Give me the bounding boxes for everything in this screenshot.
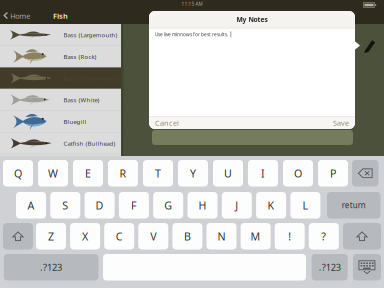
button[interactable]: R bbox=[108, 160, 138, 186]
staticText: Bass (Largemouth) bbox=[63, 31, 117, 39]
button[interactable]: .?123 bbox=[4, 254, 98, 280]
staticText: U bbox=[224, 166, 232, 180]
button[interactable]: Bass (Rock) bbox=[0, 46, 121, 67]
button[interactable]: F bbox=[119, 192, 149, 218]
button[interactable]: H bbox=[187, 192, 217, 218]
staticText: X bbox=[82, 229, 88, 243]
staticText: S bbox=[62, 198, 68, 212]
button[interactable]: Cancel bbox=[155, 117, 195, 129]
button[interactable]: I bbox=[248, 160, 278, 186]
button[interactable]: Bass (Largemouth) bbox=[0, 24, 121, 46]
staticText: Z bbox=[48, 229, 54, 243]
staticText: Bass (Rock) bbox=[63, 52, 96, 61]
staticText: Fish bbox=[53, 11, 68, 21]
staticText: Cancel bbox=[155, 118, 179, 128]
staticText: J bbox=[235, 198, 238, 212]
staticText: H bbox=[198, 198, 206, 212]
staticText: .?123 bbox=[40, 261, 62, 274]
staticText: N bbox=[217, 229, 225, 243]
button[interactable]: Shift bbox=[343, 223, 381, 249]
button[interactable]: K bbox=[256, 192, 286, 218]
button[interactable]: Save bbox=[309, 117, 349, 129]
staticText: E bbox=[85, 166, 91, 180]
staticText: .?123 bbox=[319, 261, 341, 274]
button[interactable]: A bbox=[16, 192, 46, 218]
button[interactable]: C bbox=[104, 223, 134, 249]
button[interactable]: ? bbox=[309, 223, 339, 249]
staticText: L bbox=[302, 198, 308, 212]
button[interactable]: M bbox=[241, 223, 271, 249]
staticText: My Notes bbox=[236, 15, 267, 24]
staticText: R bbox=[119, 166, 126, 180]
button[interactable]: Home bbox=[0, 8, 36, 24]
staticText: K bbox=[268, 198, 275, 212]
staticText: ? bbox=[321, 229, 326, 243]
staticText: D bbox=[96, 198, 104, 212]
staticText: G bbox=[164, 198, 172, 212]
button[interactable]: U bbox=[213, 160, 243, 186]
button[interactable]: L bbox=[290, 192, 320, 218]
staticText: 11:15 AM bbox=[181, 1, 202, 7]
button[interactable]: Z bbox=[36, 223, 66, 249]
staticText: Use live minnows for best results. bbox=[155, 31, 228, 38]
staticText: I bbox=[261, 166, 265, 180]
staticText: M bbox=[251, 229, 261, 243]
staticText: Catfish (Bullhead) bbox=[63, 139, 115, 147]
staticText: V bbox=[150, 229, 156, 243]
button[interactable]: S bbox=[50, 192, 80, 218]
staticText: Y bbox=[190, 166, 196, 180]
staticText: T bbox=[155, 166, 161, 180]
button[interactable]: ! bbox=[275, 223, 305, 249]
staticText: W bbox=[48, 166, 58, 180]
staticText: P bbox=[330, 166, 336, 180]
button[interactable]: Q bbox=[3, 160, 33, 186]
staticText: Bass (White) bbox=[63, 96, 99, 104]
staticText: B bbox=[184, 229, 191, 243]
button[interactable]: B bbox=[172, 223, 202, 249]
button[interactable]: E bbox=[73, 160, 103, 186]
button[interactable]: D bbox=[85, 192, 115, 218]
button[interactable]: Edit notes bbox=[361, 38, 378, 55]
button[interactable]: return bbox=[327, 192, 380, 218]
button[interactable]: P bbox=[318, 160, 348, 186]
button[interactable]: .?123 bbox=[312, 254, 348, 280]
button[interactable]: N bbox=[206, 223, 236, 249]
staticText: Save bbox=[333, 118, 349, 128]
button[interactable]: Bass (Smallmouth) bbox=[0, 67, 121, 89]
button[interactable]: Shift bbox=[3, 223, 33, 249]
button[interactable]: J bbox=[222, 192, 252, 218]
staticText: Home bbox=[10, 11, 30, 21]
button[interactable]: Bluegill bbox=[0, 111, 121, 132]
button[interactable]: T bbox=[143, 160, 173, 186]
staticText: Bluegill bbox=[63, 118, 86, 126]
button[interactable]: Y bbox=[178, 160, 208, 186]
button[interactable]: Delete bbox=[352, 160, 378, 186]
staticText: Q bbox=[14, 166, 22, 180]
staticText: C bbox=[116, 229, 123, 243]
staticText: O bbox=[294, 166, 302, 180]
button[interactable]: O bbox=[283, 160, 313, 186]
button[interactable]: Catfish (Bullhead) bbox=[0, 132, 121, 154]
button[interactable]: V bbox=[138, 223, 168, 249]
button[interactable]: W bbox=[38, 160, 68, 186]
button[interactable]: X bbox=[70, 223, 100, 249]
button[interactable]: Bass (White) bbox=[0, 89, 121, 111]
button[interactable]: G bbox=[153, 192, 183, 218]
button[interactable]: Hide keyboard bbox=[353, 254, 381, 280]
staticText: A bbox=[27, 198, 34, 212]
staticText: return bbox=[342, 200, 366, 211]
staticText: ! bbox=[288, 229, 291, 243]
staticText: F bbox=[131, 198, 137, 212]
